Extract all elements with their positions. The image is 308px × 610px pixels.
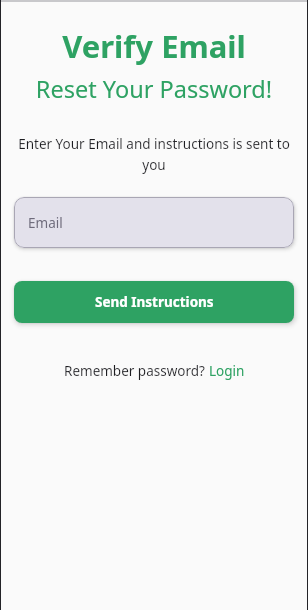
button[interactable]: Login <box>209 362 245 380</box>
button[interactable]: Send Instructions <box>14 281 294 323</box>
staticText: Reset Your Password! <box>14 73 294 105</box>
staticText: Verify Email <box>14 25 294 67</box>
staticText: Send Instructions <box>95 293 214 311</box>
staticText: Email <box>28 214 63 232</box>
staticText: Remember password? <box>64 362 209 380</box>
staticText: Login <box>209 362 245 380</box>
button[interactable]: Email <box>14 197 294 248</box>
staticText: Enter Your Email and instructions is sen… <box>16 135 292 174</box>
